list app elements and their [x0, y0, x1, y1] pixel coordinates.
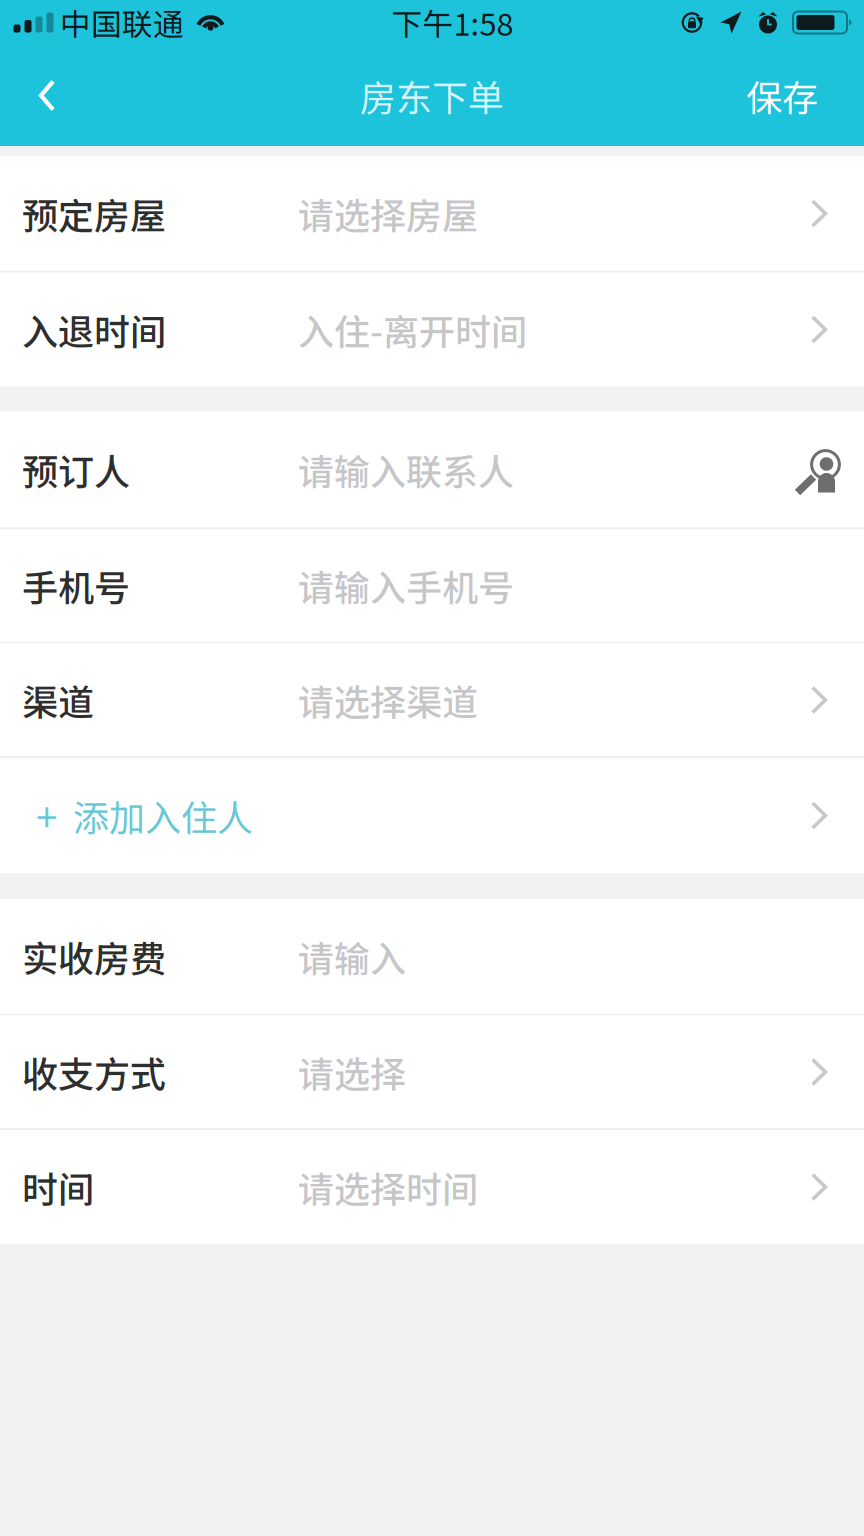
button[interactable]: 手机号 — [0, 529, 864, 642]
staticText: 时间 — [22, 1161, 94, 1213]
staticText: 入住-离开时间 — [298, 303, 527, 355]
staticText: 预订人 — [22, 443, 130, 495]
staticText: 请输入联系人 — [298, 443, 514, 495]
button[interactable]: 预定房屋 — [0, 156, 864, 271]
staticText: 入退时间 — [22, 303, 166, 355]
staticText: 渠道 — [22, 674, 94, 726]
staticText: 请选择 — [298, 1046, 406, 1098]
button[interactable]: 时间 — [0, 1130, 864, 1244]
staticText: 添加入住人 — [73, 789, 253, 841]
staticText: 房东下单 — [360, 69, 504, 121]
button[interactable]: 渠道 — [0, 643, 864, 756]
staticText: 保存 — [746, 69, 818, 121]
staticText: 请输入手机号 — [298, 559, 514, 611]
button[interactable]: 收支方式 — [0, 1015, 864, 1128]
staticText: 请选择时间 — [298, 1161, 478, 1213]
button[interactable]: 实收房费 — [0, 899, 864, 1014]
staticText: + — [36, 787, 57, 843]
staticText: 实收房费 — [22, 930, 166, 982]
staticText: 请输入 — [298, 930, 406, 982]
staticText: 请选择渠道 — [298, 674, 478, 726]
button[interactable]: 预订人 — [0, 411, 864, 527]
button[interactable]: + — [0, 758, 864, 873]
button[interactable]: 入退时间 — [0, 272, 864, 386]
button[interactable]: Choose from contacts — [790, 444, 838, 494]
button[interactable]: 保存 — [722, 45, 864, 146]
staticText: 收支方式 — [22, 1046, 166, 1098]
staticText: 中国联通 — [60, 0, 184, 45]
staticText: 预定房屋 — [22, 187, 166, 239]
staticText: 手机号 — [22, 559, 130, 611]
button[interactable]: Back — [0, 45, 86, 146]
staticText: 下午1:58 — [391, 0, 513, 45]
staticText: 请选择房屋 — [298, 187, 478, 239]
